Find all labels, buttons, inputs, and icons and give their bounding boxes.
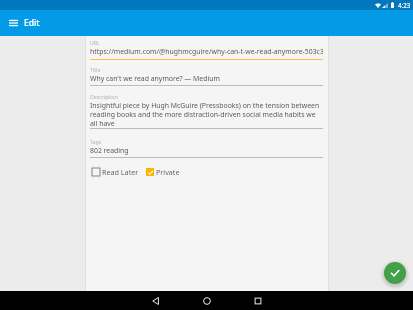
staticText: Private xyxy=(156,167,180,177)
button[interactable]: Home xyxy=(198,292,216,310)
button[interactable]: Recent apps xyxy=(249,292,267,310)
staticText: 802 reading xyxy=(90,146,129,155)
staticText: Title xyxy=(90,66,101,73)
button[interactable]: Private xyxy=(146,167,180,177)
button[interactable]: Back xyxy=(147,292,165,310)
button[interactable]: Title xyxy=(90,66,323,93)
staticText: Description xyxy=(90,93,118,100)
staticText: https://medium.com/@hughmcguire/why-can-… xyxy=(90,47,323,56)
staticText: URL xyxy=(90,39,100,46)
button[interactable]: Read Later xyxy=(92,167,139,177)
button[interactable]: Save xyxy=(384,262,406,284)
button[interactable]: Description xyxy=(90,93,323,138)
button[interactable]: Open navigation drawer xyxy=(4,14,22,32)
staticText: Tags xyxy=(90,138,102,145)
staticText: Why can't we read anymore? — Medium xyxy=(90,74,220,83)
staticText: Insightful piece by Hugh McGuire (Pressb… xyxy=(90,101,323,128)
staticText: Read Later xyxy=(102,167,139,177)
button[interactable]: URL xyxy=(90,39,323,66)
staticText: 4:23 xyxy=(398,1,411,9)
staticText: Edit xyxy=(24,17,40,29)
button[interactable]: Tags xyxy=(90,138,323,163)
